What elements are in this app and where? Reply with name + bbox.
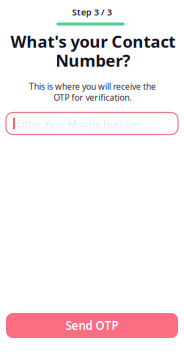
staticText: Number? (55, 49, 130, 72)
button[interactable]: Enter Your Mobile Number (6, 112, 178, 134)
button[interactable]: Send OTP (6, 313, 178, 338)
staticText: Send OTP (65, 318, 118, 333)
staticText: OTP for verification. (53, 92, 131, 103)
staticText: What's your Contact (10, 30, 175, 53)
staticText: Step 3 / 3 (72, 6, 112, 18)
staticText: Enter Your Mobile Number (17, 117, 140, 130)
staticText: This is where you will receive the (29, 81, 156, 92)
